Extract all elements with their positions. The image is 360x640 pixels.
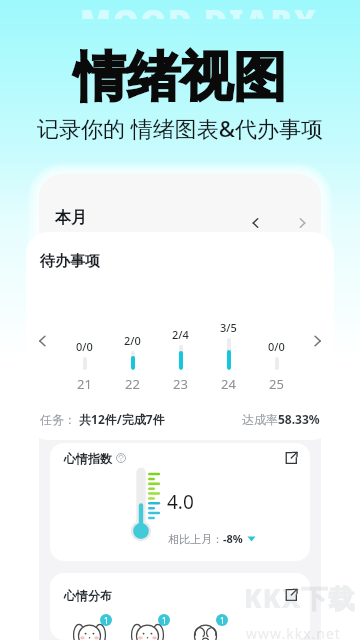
staticText: 3/5 <box>220 320 237 335</box>
button[interactable]: 2/0 <box>108 310 156 394</box>
staticText: KKX下载 <box>244 580 356 616</box>
button[interactable]: 1 <box>100 614 112 626</box>
staticText: 1 <box>104 615 109 626</box>
staticText: 24 <box>221 375 236 393</box>
staticText: 4.0 <box>167 489 194 515</box>
button[interactable]: Previous month <box>244 211 268 234</box>
button[interactable]: Open mood index detail <box>282 449 300 467</box>
staticText: 0/0 <box>76 339 93 354</box>
button[interactable]: 0/0 <box>252 310 300 394</box>
staticText: www.kkx.net <box>246 624 341 640</box>
staticText: 2/4 <box>172 327 189 342</box>
staticText: 相比上月： <box>168 532 223 546</box>
button[interactable]: 3/5 <box>204 310 252 394</box>
staticText: 22 <box>125 375 140 393</box>
staticText: 1 <box>162 615 167 626</box>
staticText: 0/0 <box>268 339 285 354</box>
button[interactable]: 心情分布 <box>50 573 310 640</box>
staticText: 心情指数 <box>64 451 112 466</box>
staticText: -8% <box>223 531 243 546</box>
button[interactable]: 1 <box>216 614 228 626</box>
staticText: 23 <box>173 375 188 393</box>
staticText: MOOD DIARY <box>80 0 318 19</box>
staticText: 58.33% <box>278 411 320 427</box>
staticText: 2/0 <box>124 333 141 348</box>
staticText: 本月 <box>55 208 87 228</box>
button[interactable]: Previous week <box>26 310 60 394</box>
staticText: 待办事项 <box>40 252 100 271</box>
staticText: 心情分布 <box>64 588 112 603</box>
staticText: 25 <box>269 375 284 393</box>
staticText: 情绪视图 <box>0 44 360 111</box>
staticText: 记录你的 情绪图表&代办事项 <box>0 113 360 143</box>
button[interactable]: 心情指数 <box>50 443 310 561</box>
staticText: 21 <box>77 375 92 393</box>
button[interactable]: 0/0 <box>60 310 108 394</box>
staticText: 共12件/完成7件 <box>76 411 165 427</box>
staticText: 任务： <box>40 412 76 427</box>
staticText: 1 <box>220 615 225 626</box>
button[interactable]: 2/4 <box>156 310 204 394</box>
staticText: 达成率 <box>242 412 278 427</box>
button[interactable]: Next month <box>290 211 314 234</box>
button[interactable]: Open mood distribution detail <box>282 586 300 604</box>
button[interactable]: Next week <box>300 310 334 394</box>
button[interactable]: 1 <box>158 614 170 626</box>
